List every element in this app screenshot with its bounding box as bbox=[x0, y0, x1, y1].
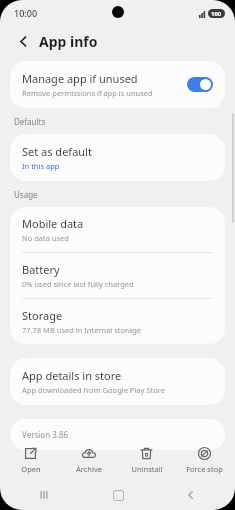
staticText: 10:00 bbox=[14, 7, 38, 19]
staticText: Storage bbox=[22, 308, 63, 323]
staticText: Mobile data bbox=[22, 216, 84, 231]
staticText: Open bbox=[21, 464, 41, 474]
button[interactable]: Manage app if unused bbox=[10, 61, 225, 108]
button[interactable]: Archive bbox=[61, 444, 116, 476]
button[interactable]: Force stop bbox=[177, 444, 232, 476]
button[interactable]: Recents bbox=[14, 482, 74, 508]
staticText: App info bbox=[39, 32, 98, 51]
button[interactable]: Storage bbox=[10, 299, 225, 344]
button[interactable]: Manage app if unused toggle bbox=[187, 77, 213, 92]
staticText: Set as default bbox=[22, 144, 92, 159]
staticText: App details in store bbox=[22, 368, 122, 383]
button[interactable]: Mobile data bbox=[10, 207, 225, 252]
button[interactable]: Battery bbox=[10, 253, 225, 298]
staticText: 100 bbox=[211, 10, 222, 18]
staticText: App downloaded from Google Play Store bbox=[22, 385, 165, 395]
staticText: Manage app if unused bbox=[22, 71, 138, 86]
button[interactable]: Set as default bbox=[10, 134, 225, 181]
button[interactable]: Back bbox=[14, 32, 32, 50]
staticText: Force stop bbox=[186, 464, 223, 474]
staticText: No data used bbox=[22, 233, 69, 243]
button[interactable]: Uninstall bbox=[119, 444, 174, 476]
staticText: Archive bbox=[76, 464, 102, 474]
staticText: Uninstall bbox=[131, 464, 163, 474]
staticText: 77.78 MB used in Internal storage bbox=[22, 325, 142, 335]
button[interactable]: Open bbox=[3, 444, 58, 476]
staticText: Remove permissions if app is unused bbox=[22, 88, 153, 98]
staticText: Battery bbox=[22, 262, 60, 277]
staticText: Version 3.86 bbox=[22, 429, 69, 440]
button[interactable]: Home bbox=[88, 482, 148, 508]
button[interactable]: Back bbox=[161, 482, 221, 508]
staticText: 0% used since last fully charged bbox=[22, 279, 134, 289]
button[interactable]: App details in store bbox=[10, 358, 225, 405]
staticText: Defaults bbox=[14, 116, 46, 127]
staticText: Usage bbox=[14, 189, 38, 200]
staticText: In this app bbox=[22, 161, 60, 171]
